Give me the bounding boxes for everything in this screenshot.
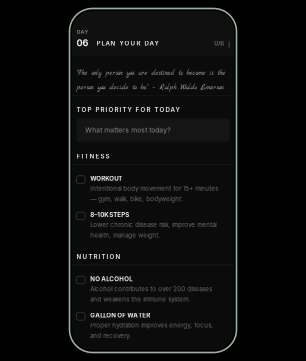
button[interactable]: What matters most today? [76, 119, 229, 142]
button[interactable]: 8 – 1 0 K S T E P S [72, 203, 234, 239]
staticText: Intentional body movement for 15+ minute… [90, 185, 218, 203]
button[interactable]: N O A L C O H O L [72, 265, 234, 303]
staticText: “The only person you are destined to bec… [76, 68, 225, 92]
staticText: 06 [76, 38, 88, 49]
staticText: What matters most today? [85, 126, 170, 134]
staticText: D A Y [76, 28, 88, 35]
staticText: P L A N Y O U R D A Y [96, 40, 158, 47]
staticText: Lower chronic disease risk, improve ment… [90, 221, 216, 239]
button[interactable]: W O R K O U T [72, 165, 234, 203]
staticText: G A L L O N O F W A T E R [90, 312, 150, 319]
staticText: T O P P R I O R I T Y F O R T O D A Y [76, 106, 179, 113]
button[interactable]: G A L L O N O F W A T E R [72, 303, 234, 339]
staticText: W O R K O U T [90, 175, 122, 182]
staticText: N U T R I T I O N [76, 253, 120, 260]
staticText: F I T N E S S [76, 153, 109, 160]
staticText: 0/6 [214, 40, 224, 47]
staticText: Alcohol contributes to over 200 diseases… [90, 285, 212, 303]
staticText: Proper hydration improves energy, focus,… [90, 322, 213, 339]
staticText: N O A L C O H O L [90, 275, 132, 283]
staticText: 8 – 1 0 K S T E P S [90, 211, 129, 218]
